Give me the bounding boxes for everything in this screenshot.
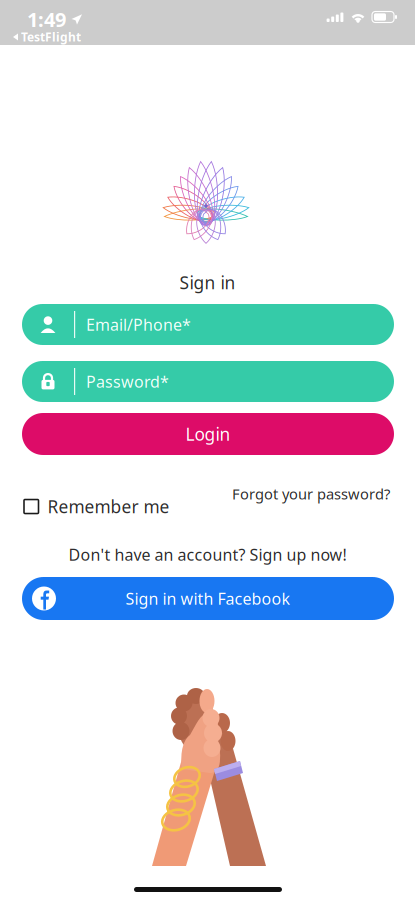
staticText: TestFlight xyxy=(21,29,81,45)
button[interactable]: Password* xyxy=(22,361,394,402)
button[interactable]: Remember me xyxy=(24,495,169,518)
button[interactable]: Don't have an account? Sign up now! xyxy=(68,544,346,565)
button[interactable]: Login xyxy=(22,413,394,455)
staticText: Sign in xyxy=(179,271,235,294)
staticText: Don't have an account? Sign up now! xyxy=(68,544,346,565)
staticText: Sign in with Facebook xyxy=(125,588,290,609)
button[interactable]: Forgot your password? xyxy=(232,484,390,503)
button[interactable]: Email/Phone* xyxy=(22,304,394,345)
staticText: Forgot your password? xyxy=(232,484,390,503)
staticText: 1:49 xyxy=(27,6,66,33)
staticText: Password* xyxy=(86,371,169,392)
button[interactable]: Sign in with Facebook xyxy=(22,577,394,620)
staticText: Login xyxy=(185,422,230,445)
staticText: Email/Phone* xyxy=(86,314,191,335)
staticText: Remember me xyxy=(47,495,169,518)
